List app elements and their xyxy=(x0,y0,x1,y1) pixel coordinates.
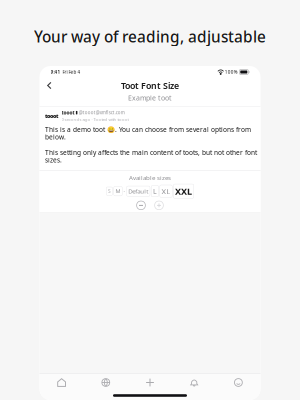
staticText: 9:41 xyxy=(50,69,60,75)
button[interactable]: S xyxy=(106,187,113,195)
button[interactable]: Notifications xyxy=(172,374,216,391)
staticText: Example toot xyxy=(128,93,172,102)
staticText: - xyxy=(123,187,125,195)
staticText: Your way of reading, adjustable xyxy=(34,26,266,47)
button[interactable]: Explore xyxy=(84,374,128,391)
button[interactable]: Default xyxy=(127,186,150,196)
staticText: L xyxy=(153,186,157,196)
button[interactable]: Compose xyxy=(128,374,172,391)
staticText: 0 seconds ago · Tooted with tooot xyxy=(61,116,128,122)
button[interactable]: XL xyxy=(160,185,172,197)
staticText: This is a demo toot 😄. You can choose fr… xyxy=(45,125,251,141)
button[interactable]: Back xyxy=(39,78,61,93)
staticText: XXL xyxy=(175,185,192,197)
button[interactable]: Increase font size xyxy=(152,200,165,211)
button[interactable]: Home xyxy=(39,374,84,391)
staticText: Available sizes xyxy=(129,173,171,182)
staticText: M xyxy=(115,187,120,195)
staticText: @tooot@xmflsct.com xyxy=(79,110,125,116)
button[interactable]: Profile xyxy=(216,374,260,391)
staticText: XL xyxy=(161,186,170,196)
staticText: tooot xyxy=(61,109,74,116)
staticText: Toot Font Size xyxy=(121,79,179,91)
button[interactable]: L xyxy=(151,185,159,197)
button[interactable]: M xyxy=(114,186,122,196)
staticText: Default xyxy=(128,187,148,195)
staticText: S xyxy=(108,188,111,194)
button[interactable]: XXL xyxy=(173,184,194,198)
staticText: 100% xyxy=(224,69,238,75)
staticText: This setting only affects the main conte… xyxy=(45,148,257,164)
staticText: tooot xyxy=(45,112,58,120)
staticText: Fri Feb 4 xyxy=(60,69,80,75)
button[interactable]: Decrease font size xyxy=(134,200,147,211)
